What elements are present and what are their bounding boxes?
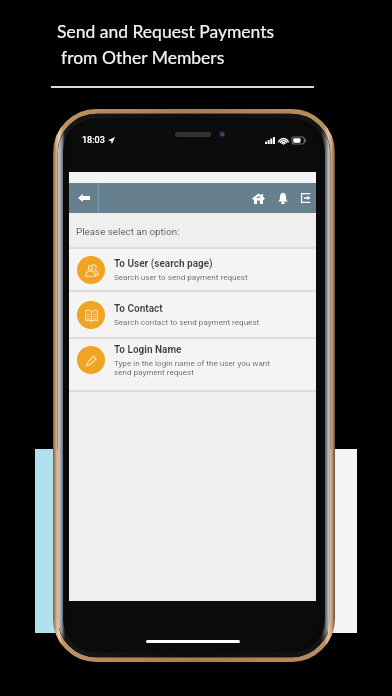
button[interactable]: To User (search page) bbox=[69, 249, 316, 290]
staticText: To Contact bbox=[114, 303, 163, 315]
staticText: To Login Name bbox=[114, 344, 182, 356]
button[interactable]: Notifications bbox=[270, 183, 295, 213]
staticText: 18:03 bbox=[82, 135, 105, 146]
staticText: Please select an option: bbox=[76, 226, 180, 237]
staticText: Search user to send payment request bbox=[114, 272, 248, 281]
staticText: Type in the login name of the user you w… bbox=[114, 358, 270, 367]
button[interactable]: To Login Name bbox=[69, 339, 316, 390]
staticText: send payment request bbox=[114, 367, 194, 376]
staticText: from Other Members bbox=[61, 47, 225, 68]
staticText: Send and Request Payments bbox=[57, 21, 275, 42]
button[interactable]: To Contact bbox=[69, 292, 316, 337]
staticText: Search contact to send payment request bbox=[114, 317, 260, 326]
button[interactable]: Log out bbox=[295, 183, 316, 213]
button[interactable]: Back bbox=[69, 183, 98, 213]
staticText: To User (search page) bbox=[114, 258, 213, 270]
button[interactable]: Home bbox=[246, 183, 270, 213]
